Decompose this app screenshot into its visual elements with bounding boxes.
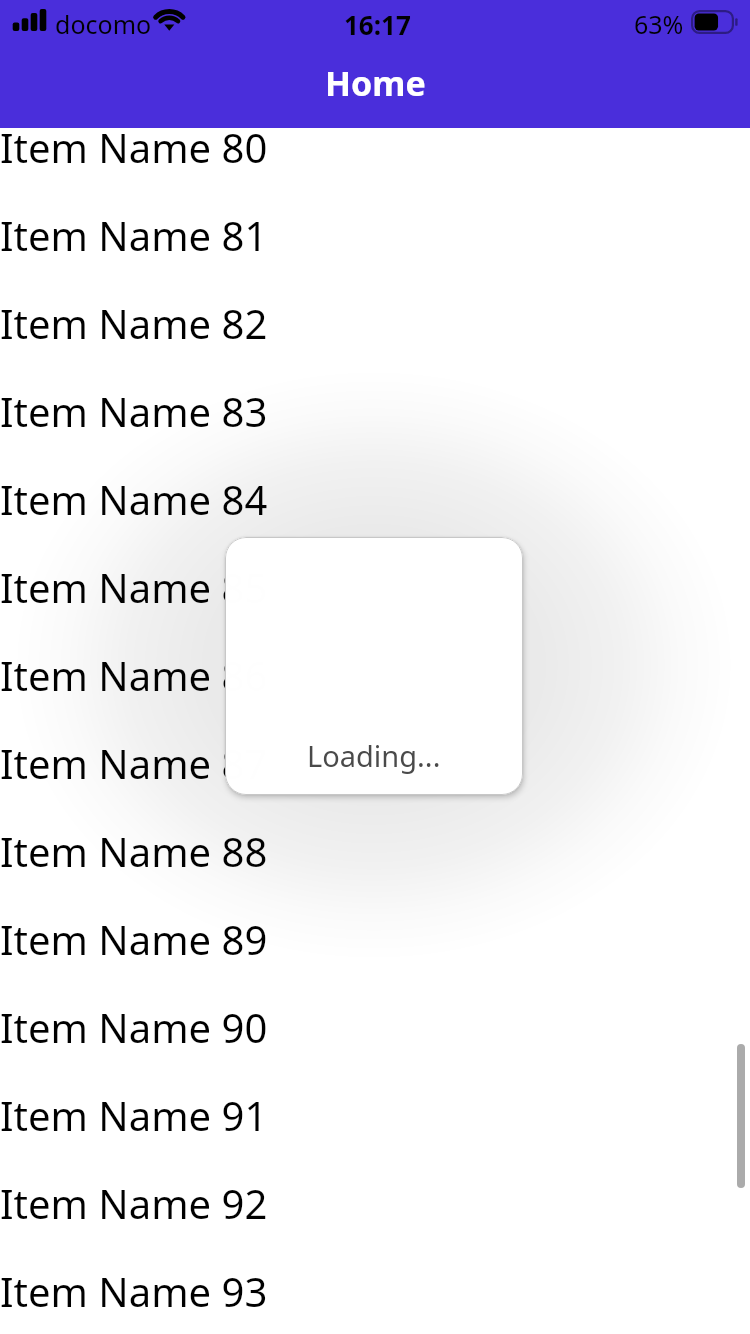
staticText: Item Name 80 — [0, 128, 268, 174]
staticText: docomo — [55, 7, 152, 41]
staticText: Item Name 93 — [0, 1264, 268, 1318]
other: Battery 63 percent — [691, 10, 739, 34]
button[interactable]: Loading... — [225, 537, 523, 795]
staticText: Item Name 92 — [0, 1176, 268, 1230]
staticText: Item Name 82 — [0, 296, 268, 350]
staticText: Item Name 90 — [0, 1000, 268, 1054]
staticText: Home — [325, 60, 426, 106]
staticText: Item Name 88 — [0, 824, 268, 878]
staticText: 63% — [634, 7, 684, 41]
staticText: Item Name 89 — [0, 912, 268, 966]
staticText: Item Name 86 — [0, 648, 268, 702]
staticText: Item Name 85 — [0, 560, 268, 614]
staticText: Item Name 84 — [0, 472, 268, 526]
button[interactable]: Item Name 85 — [0, 543, 750, 631]
staticText: Item Name 83 — [0, 384, 268, 438]
button[interactable]: Item Name 89 — [0, 895, 750, 983]
other: Cellular signal strength — [12, 9, 47, 31]
button[interactable]: Item Name 81 — [0, 191, 750, 279]
staticText: Loading... — [307, 736, 441, 775]
button[interactable]: Item Name 80 — [0, 128, 750, 191]
staticText: Item Name 91 — [0, 1088, 268, 1142]
staticText: Item Name 87 — [0, 736, 268, 790]
button[interactable]: Item Name 88 — [0, 807, 750, 895]
button[interactable]: Item Name 84 — [0, 455, 750, 543]
button[interactable]: Item Name 92 — [0, 1159, 750, 1247]
other: Wi-Fi connected — [154, 9, 184, 31]
button[interactable]: Item Name 90 — [0, 983, 750, 1071]
staticText: 16:17 — [344, 7, 411, 42]
button[interactable]: Item Name 86 — [0, 631, 750, 719]
button[interactable]: Item Name 87 — [0, 719, 750, 807]
button[interactable]: Item Name 93 — [0, 1247, 750, 1334]
button[interactable]: Item Name 82 — [0, 279, 750, 367]
button[interactable]: Item Name 83 — [0, 367, 750, 455]
staticText: Item Name 81 — [0, 208, 268, 262]
button[interactable]: Item Name 91 — [0, 1071, 750, 1159]
